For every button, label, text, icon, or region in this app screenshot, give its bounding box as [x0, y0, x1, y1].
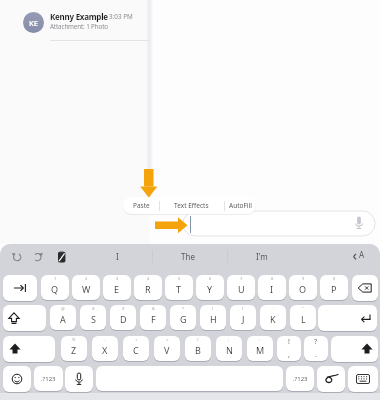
staticText: 2: [85, 276, 88, 281]
button[interactable]: AutoFill: [224, 197, 256, 214]
button[interactable]: [29, 247, 47, 265]
staticText: 1: [54, 276, 57, 281]
staticText: KE: [29, 18, 38, 28]
button[interactable]: @: [50, 305, 76, 330]
staticText: ): [242, 306, 244, 311]
staticText: N: [226, 344, 233, 356]
staticText: K: [270, 313, 276, 325]
button[interactable]: ;: [216, 336, 242, 361]
button[interactable]: =: [154, 336, 180, 361]
staticText: #: [92, 306, 95, 311]
staticText: -: [104, 337, 106, 342]
button[interactable]: [317, 366, 345, 392]
staticText: M: [256, 344, 265, 356]
staticText: ": [302, 306, 304, 311]
staticText: A: [359, 249, 365, 260]
button[interactable]: 6: [196, 275, 224, 300]
button[interactable]: [348, 366, 378, 392]
staticText: E: [114, 283, 120, 295]
staticText: U: [238, 283, 245, 295]
button[interactable]: [52, 247, 70, 265]
button[interactable]: KE: [6, 6, 146, 39]
staticText: Kenny Example: [50, 11, 108, 22]
button[interactable]: [3, 336, 55, 362]
button[interactable]: [318, 305, 377, 331]
button[interactable]: +: [123, 336, 149, 361]
button[interactable]: 5: [165, 275, 193, 300]
staticText: ': [273, 306, 274, 311]
staticText: .?123: [41, 375, 56, 383]
staticText: G: [180, 313, 187, 325]
staticText: ,: [288, 350, 290, 360]
button[interactable]: [65, 366, 93, 392]
button[interactable]: ": [290, 305, 316, 330]
button[interactable]: &: [140, 305, 166, 330]
button[interactable]: The: [158, 246, 218, 266]
staticText: D: [120, 313, 127, 325]
staticText: =: [166, 337, 169, 342]
staticText: @: [61, 306, 65, 311]
button[interactable]: .?123: [34, 366, 63, 391]
button[interactable]: I'm: [232, 246, 292, 266]
staticText: The: [181, 251, 195, 262]
button[interactable]: [331, 336, 378, 362]
button[interactable]: $: [110, 305, 136, 330]
button[interactable]: [96, 366, 283, 391]
staticText: $: [122, 306, 125, 311]
button[interactable]: [3, 305, 46, 331]
staticText: F: [151, 313, 156, 325]
button[interactable]: I: [87, 246, 147, 266]
button[interactable]: %: [61, 336, 87, 361]
button[interactable]: [352, 275, 378, 301]
button[interactable]: ': [260, 305, 286, 330]
button[interactable]: [3, 275, 37, 301]
button[interactable]: [8, 247, 26, 265]
button[interactable]: !: [277, 336, 301, 361]
button[interactable]: Text Effects: [159, 197, 224, 214]
button[interactable]: ): [230, 305, 256, 330]
staticText: H: [210, 313, 217, 325]
staticText: Y: [207, 283, 213, 295]
button[interactable]: Paste: [123, 197, 159, 214]
staticText: V: [164, 344, 170, 356]
staticText: P: [331, 283, 337, 295]
staticText: 0: [333, 276, 336, 281]
staticText: J: [242, 313, 245, 325]
staticText: ;: [228, 337, 230, 342]
button[interactable]: 4: [134, 275, 162, 300]
staticText: 7: [240, 276, 243, 281]
staticText: /: [197, 337, 199, 342]
staticText: L: [301, 313, 306, 325]
button[interactable]: [3, 366, 31, 392]
button[interactable]: -: [92, 336, 118, 361]
button[interactable]: ?: [304, 336, 328, 361]
staticText: T: [176, 283, 182, 295]
button[interactable]: :: [247, 336, 273, 361]
button[interactable]: #: [80, 305, 106, 330]
staticText: I: [270, 283, 274, 295]
button[interactable]: 2: [72, 275, 100, 300]
staticText: R: [145, 283, 151, 295]
staticText: (: [212, 306, 214, 311]
button[interactable]: /: [185, 336, 211, 361]
staticText: ?: [314, 337, 318, 347]
staticText: AutoFill: [229, 201, 252, 210]
button[interactable]: *: [170, 305, 196, 330]
button[interactable]: (: [200, 305, 226, 330]
button[interactable]: 3: [103, 275, 131, 300]
button[interactable]: 8: [258, 275, 286, 300]
staticText: Attachment: 1 Photo: [50, 22, 108, 31]
staticText: 9: [302, 276, 305, 281]
button[interactable]: 9: [289, 275, 317, 300]
staticText: :: [259, 337, 261, 342]
staticText: S: [91, 313, 96, 325]
button[interactable]: 7: [227, 275, 255, 300]
staticText: Text Effects: [174, 201, 209, 210]
button[interactable]: [183, 211, 375, 236]
button[interactable]: .?123: [286, 366, 314, 391]
staticText: Paste: [133, 201, 150, 210]
button[interactable]: 1: [41, 275, 69, 300]
staticText: I'm: [256, 251, 268, 262]
staticText: +: [135, 337, 138, 342]
button[interactable]: 0: [320, 275, 348, 300]
